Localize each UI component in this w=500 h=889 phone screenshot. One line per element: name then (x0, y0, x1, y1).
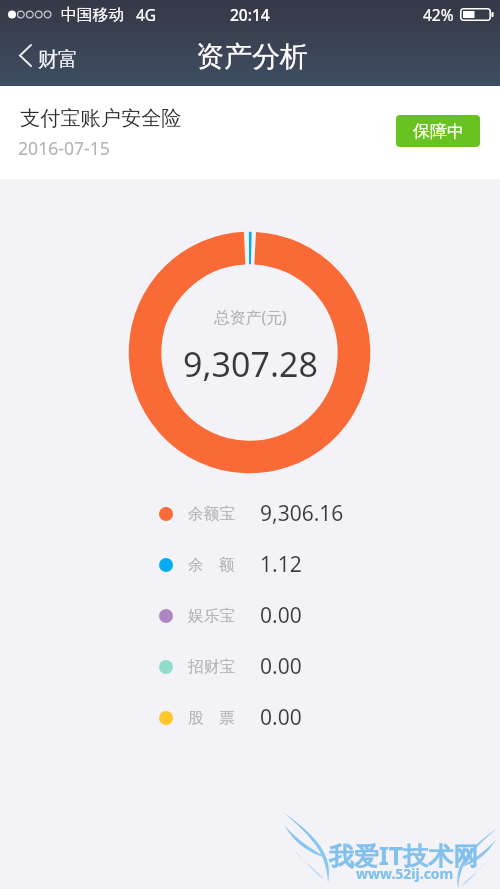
staticText: 招财宝 (188, 657, 235, 677)
staticText: 财富 (38, 47, 78, 72)
staticText: www.52ij.com (356, 864, 454, 883)
staticText: 娱乐宝 (188, 606, 235, 626)
button[interactable]: 股 (159, 692, 359, 743)
staticText: 股 (188, 708, 204, 728)
staticText: 0.00 (260, 601, 302, 630)
button[interactable]: 余额宝 (159, 488, 359, 539)
staticText: 额 (219, 555, 235, 575)
staticText: 4G (136, 4, 157, 25)
staticText: 9,306.16 (260, 499, 344, 528)
staticText: 0.00 (260, 703, 302, 732)
staticText: 42% (423, 4, 454, 25)
staticText: 我爱IT技术网 (329, 838, 479, 872)
staticText: 支付宝账户安全险 (20, 106, 182, 131)
staticText: 保障中 (413, 121, 464, 142)
staticText: 票 (219, 708, 235, 728)
staticText: 20:14 (230, 4, 270, 25)
button[interactable]: 余 (159, 539, 359, 590)
staticText: 2016-07-15 (18, 136, 110, 160)
staticText: 0.00 (260, 652, 302, 681)
staticText: 1.12 (260, 550, 302, 579)
staticText: 9,307.28 (183, 341, 318, 387)
button[interactable]: 返回财富 Back to Wealth (0, 39, 92, 80)
staticText: 余额宝 (188, 504, 235, 524)
staticText: 中国移动 (61, 5, 125, 25)
button[interactable]: 娱乐宝 (159, 590, 359, 641)
staticText: 余 (188, 555, 204, 575)
staticText: 总资产(元) (214, 306, 287, 328)
button[interactable]: 保障中 (396, 115, 480, 147)
button[interactable]: 招财宝 (159, 641, 359, 692)
staticText: 资产分析 (196, 39, 308, 74)
